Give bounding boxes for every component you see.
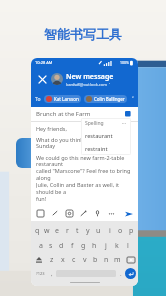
button[interactable]: n — [101, 253, 112, 267]
button[interactable]: v — [79, 253, 90, 267]
staticText: We could go this new farm-2-table restar… — [36, 154, 133, 202]
staticText: y — [86, 226, 90, 236]
staticText: New message — [66, 72, 114, 82]
staticText: , — [51, 270, 53, 278]
staticText: restraint — [85, 145, 108, 152]
staticText: restaurant — [85, 132, 113, 139]
button[interactable]: Draw — [78, 208, 89, 219]
button[interactable]: Spelling — [81, 118, 131, 129]
button[interactable]: ?123 — [33, 267, 47, 280]
button[interactable]: f — [67, 238, 78, 253]
button[interactable]: e — [52, 223, 62, 238]
button[interactable]: , — [47, 267, 56, 280]
button[interactable]: Enter — [125, 268, 136, 279]
button[interactable]: j — [100, 238, 111, 253]
button[interactable]: . — [116, 267, 125, 280]
staticText: . — [120, 270, 122, 278]
button[interactable]: r — [62, 223, 72, 238]
staticText: Brunch at the Farm — [36, 110, 91, 118]
staticText: f — [71, 241, 74, 251]
button[interactable]: a — [36, 238, 46, 253]
staticText: Kat Larsson — [54, 96, 79, 102]
button[interactable]: Attach file — [35, 208, 46, 219]
staticText: x — [61, 255, 65, 265]
staticText: Hey friends, — [36, 125, 67, 132]
button[interactable]: z — [46, 253, 57, 267]
button[interactable]: Attach link — [50, 208, 61, 219]
button[interactable]: d — [56, 238, 67, 253]
button[interactable]: Shift — [31, 253, 46, 267]
staticText: k — [115, 241, 119, 251]
button[interactable]: i — [104, 223, 115, 238]
staticText: q — [35, 226, 40, 236]
button[interactable]: p — [126, 223, 137, 238]
button[interactable]: g — [78, 238, 89, 253]
staticText: d — [59, 241, 64, 251]
button[interactable]: Backspace — [123, 253, 138, 267]
button[interactable]: More options — [106, 208, 117, 219]
button[interactable]: x — [57, 253, 68, 267]
button[interactable]: o — [115, 223, 126, 238]
button[interactable]: restraint — [81, 142, 131, 155]
button[interactable]: Colin Ballinger — [84, 95, 127, 103]
staticText: g — [81, 241, 86, 251]
staticText: Spelling — [85, 120, 104, 127]
staticText: 100% — [120, 60, 129, 65]
button[interactable]: h — [89, 238, 100, 253]
staticText: m — [114, 255, 121, 265]
button[interactable]: s — [46, 238, 56, 253]
staticText: z — [50, 255, 54, 265]
button[interactable]: Brunch at the Farm — [31, 107, 138, 121]
staticText: p — [129, 226, 134, 236]
staticText: 10:28 AM — [35, 60, 53, 65]
staticText: h — [92, 241, 97, 251]
staticText: n — [104, 255, 109, 265]
staticText: r — [66, 226, 69, 236]
staticText: b — [93, 255, 98, 265]
staticText: l — [127, 241, 129, 251]
button[interactable]: Kat Larsson — [44, 95, 81, 103]
button[interactable]: q — [32, 223, 42, 238]
staticText: ?123 — [36, 271, 45, 276]
staticText: ˅ — [132, 95, 134, 103]
staticText: j — [105, 241, 107, 251]
staticText: a — [39, 241, 43, 251]
staticText: 智能书写工具 — [0, 26, 166, 42]
staticText: w — [44, 226, 50, 236]
button[interactable]: Attach — [124, 110, 133, 119]
staticText: c — [72, 255, 76, 265]
staticText: o — [118, 226, 123, 236]
staticText: s — [49, 241, 53, 251]
button[interactable]: Send — [123, 208, 134, 219]
button[interactable]: k — [111, 238, 122, 253]
staticText: kardw8@outlook.com ˅ — [66, 82, 111, 87]
button[interactable]: y — [82, 223, 93, 238]
staticText: t — [76, 226, 79, 236]
staticText: What do you think about brunch on Sunday — [36, 136, 128, 150]
staticText: i — [109, 226, 111, 236]
staticText: ··· — [122, 120, 127, 127]
button[interactable]: u — [93, 223, 104, 238]
button[interactable]: l — [122, 238, 133, 253]
button[interactable]: m — [112, 253, 123, 267]
button[interactable]: Camera — [64, 208, 75, 219]
staticText: Colin Ballinger — [94, 96, 125, 102]
button[interactable]: t — [72, 223, 82, 238]
staticText: v — [83, 255, 87, 265]
staticText: To — [35, 96, 41, 103]
button[interactable]: Close — [35, 72, 49, 86]
button[interactable]: b — [90, 253, 101, 267]
staticText: e — [55, 226, 59, 236]
button[interactable]: c — [68, 253, 79, 267]
button[interactable]: Close — [31, 67, 138, 91]
staticText: u — [96, 226, 101, 236]
button[interactable]: w — [42, 223, 52, 238]
button[interactable]: To — [31, 91, 138, 107]
button[interactable]: Voice — [92, 208, 103, 219]
button[interactable]: restaurant — [81, 129, 131, 142]
